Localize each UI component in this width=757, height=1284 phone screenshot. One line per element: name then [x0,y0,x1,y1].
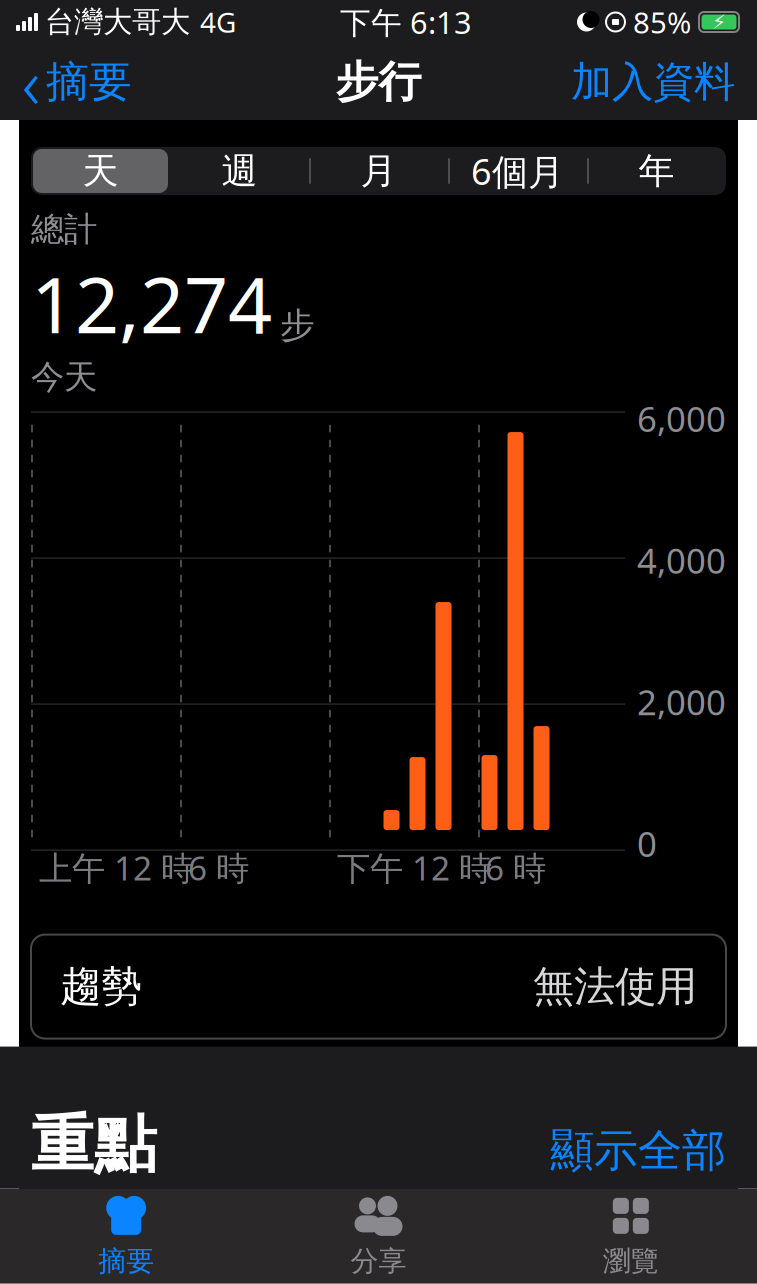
staticText: 6,000 [637,396,726,442]
staticText: 下午 12 時 [337,845,492,890]
staticText: 步 [280,304,315,347]
button[interactable]: 顯示全部 [550,1124,726,1178]
button[interactable]: 摘要 [0,1189,252,1284]
staticText: 下午 6:13 [340,2,472,42]
staticText: 摘要 [46,56,132,108]
button[interactable]: 月 [309,147,448,195]
staticText: 重點 [31,1106,157,1183]
button[interactable]: 分享 [252,1189,505,1284]
staticText: 6 時 [485,845,546,890]
button[interactable]: 週 [170,147,309,195]
staticText: 台灣大哥大 [45,4,190,40]
staticText: 顯示全部 [550,1124,726,1178]
button[interactable]: ‹ [8,52,146,112]
staticText: 2,000 [637,679,726,725]
staticText: 摘要 [98,1244,154,1278]
staticText: 分享 [350,1244,406,1278]
staticText: 4,000 [637,537,726,583]
staticText: 步行 [335,56,421,108]
staticText: 上午 12 時 [39,845,194,890]
staticText: 0 [637,820,657,866]
staticText: 週 [221,149,257,193]
staticText: ⚡︎ [712,11,726,33]
staticText: 6個月 [471,147,564,195]
button[interactable]: 趨勢 [31,935,726,1039]
button[interactable]: 年 [587,147,726,195]
staticText: 6 時 [188,845,249,890]
staticText: ‹ [22,36,40,128]
staticText: 12,274 [31,252,272,355]
button[interactable]: 加入資料 [557,52,749,112]
staticText: 4G [200,3,236,41]
staticText: 今天 [31,357,97,397]
button[interactable]: 天 [31,147,170,195]
staticText: 加入資料 [571,57,735,107]
staticText: 天 [82,149,118,193]
button[interactable]: 瀏覽 [505,1189,757,1284]
staticText: 85% [633,2,691,41]
staticText: 年 [638,149,674,193]
staticText: 趨勢 [60,961,142,1012]
staticText: 瀏覽 [603,1244,659,1278]
button[interactable]: 6個月 [448,147,587,195]
staticText: 無法使用 [533,961,697,1012]
staticText: 總計 [31,209,97,250]
staticText: 月 [360,149,396,193]
